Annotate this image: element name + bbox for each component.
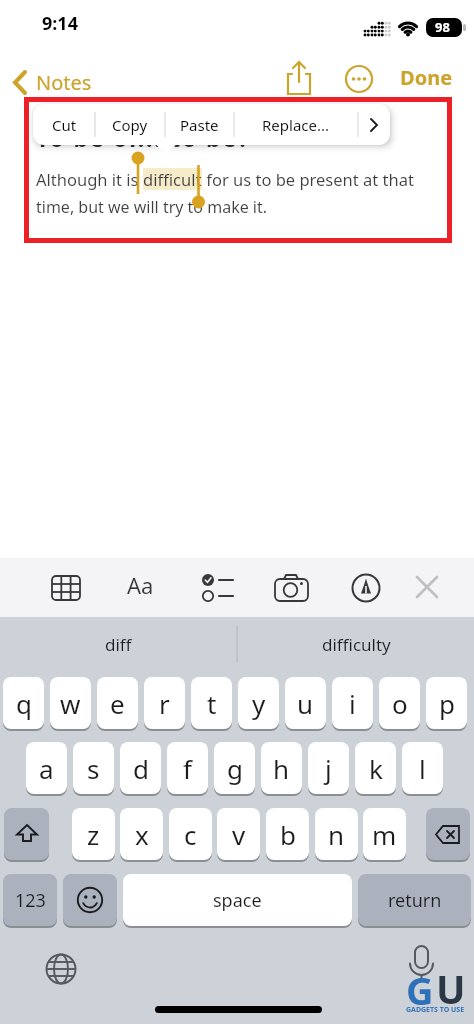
staticText: k bbox=[369, 751, 383, 786]
button[interactable]: o bbox=[379, 677, 420, 729]
button[interactable] bbox=[350, 572, 382, 604]
staticText: l bbox=[419, 751, 426, 786]
staticText: 9:14 bbox=[42, 11, 78, 36]
staticText: i bbox=[349, 686, 356, 721]
staticText: b bbox=[280, 817, 296, 852]
staticText: z bbox=[87, 817, 100, 852]
staticText: return bbox=[388, 888, 442, 913]
button[interactable]: v bbox=[217, 808, 260, 860]
button[interactable]: t bbox=[191, 677, 232, 729]
staticText: p bbox=[439, 686, 455, 721]
staticText: 98 bbox=[435, 18, 450, 36]
staticText: Done bbox=[400, 64, 453, 91]
button[interactable] bbox=[344, 64, 374, 94]
button[interactable]: q bbox=[3, 677, 44, 729]
button[interactable]: Copy bbox=[95, 104, 165, 145]
staticText: v bbox=[232, 817, 246, 852]
staticText: Aa bbox=[127, 570, 154, 600]
button[interactable]: z bbox=[72, 808, 115, 860]
button[interactable]: a bbox=[26, 742, 67, 794]
button[interactable]: x bbox=[120, 808, 163, 860]
staticText: q bbox=[16, 686, 32, 721]
button[interactable]: y bbox=[238, 677, 279, 729]
button[interactable]: h bbox=[261, 742, 302, 794]
button[interactable]: k bbox=[355, 742, 396, 794]
button[interactable] bbox=[414, 574, 440, 600]
staticText: n bbox=[328, 817, 345, 852]
staticText: u bbox=[297, 686, 314, 721]
button[interactable]: i bbox=[332, 677, 373, 729]
button[interactable]: Replace... bbox=[234, 104, 358, 145]
button[interactable] bbox=[40, 948, 84, 992]
button[interactable]: j bbox=[308, 742, 349, 794]
button[interactable]: Done bbox=[398, 62, 460, 94]
button[interactable] bbox=[426, 808, 470, 860]
staticText: y bbox=[252, 686, 266, 721]
button[interactable]: f bbox=[167, 742, 208, 794]
staticText: e bbox=[110, 686, 125, 721]
staticText: d bbox=[133, 751, 149, 786]
staticText: difficult bbox=[143, 168, 202, 190]
staticText: Cut bbox=[52, 115, 77, 135]
staticText: 123 bbox=[15, 888, 46, 913]
staticText: j bbox=[325, 751, 332, 786]
button[interactable]: g bbox=[214, 742, 255, 794]
staticText: m bbox=[372, 817, 397, 852]
button[interactable]: d bbox=[120, 742, 161, 794]
button[interactable]: e bbox=[97, 677, 138, 729]
button[interactable]: s bbox=[73, 742, 114, 794]
staticText: diff bbox=[105, 633, 132, 656]
button[interactable]: Paste bbox=[165, 104, 234, 145]
button[interactable]: w bbox=[50, 677, 91, 729]
staticText: g bbox=[227, 751, 243, 786]
button[interactable] bbox=[402, 944, 442, 992]
staticText: r bbox=[159, 686, 170, 721]
staticText: f bbox=[183, 751, 192, 786]
staticText: Notes bbox=[36, 69, 92, 96]
button[interactable]: b bbox=[266, 808, 309, 860]
button[interactable]: Cut bbox=[33, 104, 95, 145]
button[interactable] bbox=[50, 572, 82, 604]
staticText: To be or... to be? bbox=[36, 122, 251, 153]
button[interactable] bbox=[4, 808, 49, 860]
button[interactable]: return bbox=[358, 874, 471, 926]
button[interactable]: r bbox=[144, 677, 185, 729]
button[interactable]: space bbox=[123, 874, 352, 926]
staticText: GADGETS TO USE bbox=[406, 1005, 465, 1015]
button[interactable]: diff bbox=[0, 620, 236, 668]
staticText: w bbox=[60, 686, 81, 721]
staticText: Replace... bbox=[262, 115, 330, 135]
button[interactable]: 123 bbox=[3, 874, 57, 926]
button[interactable] bbox=[283, 58, 319, 98]
staticText: t bbox=[207, 686, 217, 721]
button[interactable] bbox=[63, 874, 117, 926]
staticText: Paste bbox=[180, 115, 219, 135]
button[interactable] bbox=[358, 104, 390, 145]
staticText: space bbox=[213, 888, 262, 913]
staticText: Although it is bbox=[36, 168, 143, 190]
button[interactable] bbox=[274, 572, 310, 604]
staticText: G bbox=[406, 964, 434, 1016]
button[interactable]: m bbox=[363, 808, 406, 860]
button[interactable]: p bbox=[426, 677, 467, 729]
button[interactable]: n bbox=[315, 808, 358, 860]
staticText: a bbox=[39, 751, 54, 786]
button[interactable]: Notes bbox=[8, 66, 100, 98]
staticText: time, but we will try to make it. bbox=[36, 196, 268, 218]
button[interactable]: Aa bbox=[127, 568, 167, 604]
staticText: difficulty bbox=[322, 633, 391, 656]
staticText: c bbox=[184, 817, 197, 852]
staticText: o bbox=[392, 686, 408, 721]
staticText: x bbox=[135, 817, 149, 852]
button[interactable]: difficulty bbox=[238, 620, 474, 668]
button[interactable]: l bbox=[402, 742, 443, 794]
staticText: for us to be present at that bbox=[202, 168, 414, 190]
staticText: Copy bbox=[112, 115, 148, 135]
button[interactable] bbox=[200, 572, 236, 604]
staticText: s bbox=[87, 751, 100, 786]
staticText: h bbox=[273, 751, 290, 786]
button[interactable]: u bbox=[285, 677, 326, 729]
staticText: U bbox=[436, 962, 466, 1015]
button[interactable]: c bbox=[169, 808, 212, 860]
